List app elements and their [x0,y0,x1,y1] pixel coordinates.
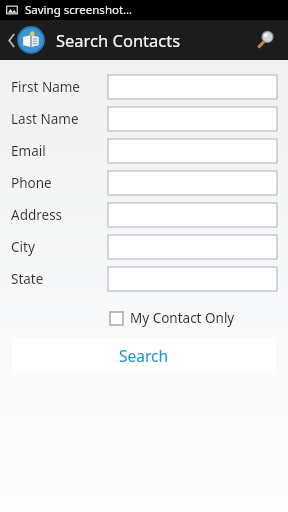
button[interactable] [108,203,277,227]
staticText: Address [11,206,63,224]
button[interactable]: Search [12,339,276,372]
button[interactable] [108,139,277,163]
staticText: State [11,270,44,288]
button[interactable] [108,267,277,291]
staticText: First Name [11,78,80,96]
button[interactable] [108,75,277,99]
button[interactable] [108,107,277,131]
button[interactable] [108,171,277,195]
staticText: Last Name [11,110,79,128]
button[interactable]: Search [247,23,281,57]
staticText: My Contact Only [130,309,235,327]
button[interactable] [108,235,277,259]
staticText: Phone [11,174,52,192]
staticText: Saving screenshot… [25,2,133,18]
staticText: Search [119,345,169,366]
staticText: City [11,238,35,256]
button[interactable]: Navigate up [5,27,47,53]
button[interactable]: My Contact Only [110,309,235,327]
staticText: Email [11,142,46,160]
staticText: Search Contacts [56,29,181,51]
